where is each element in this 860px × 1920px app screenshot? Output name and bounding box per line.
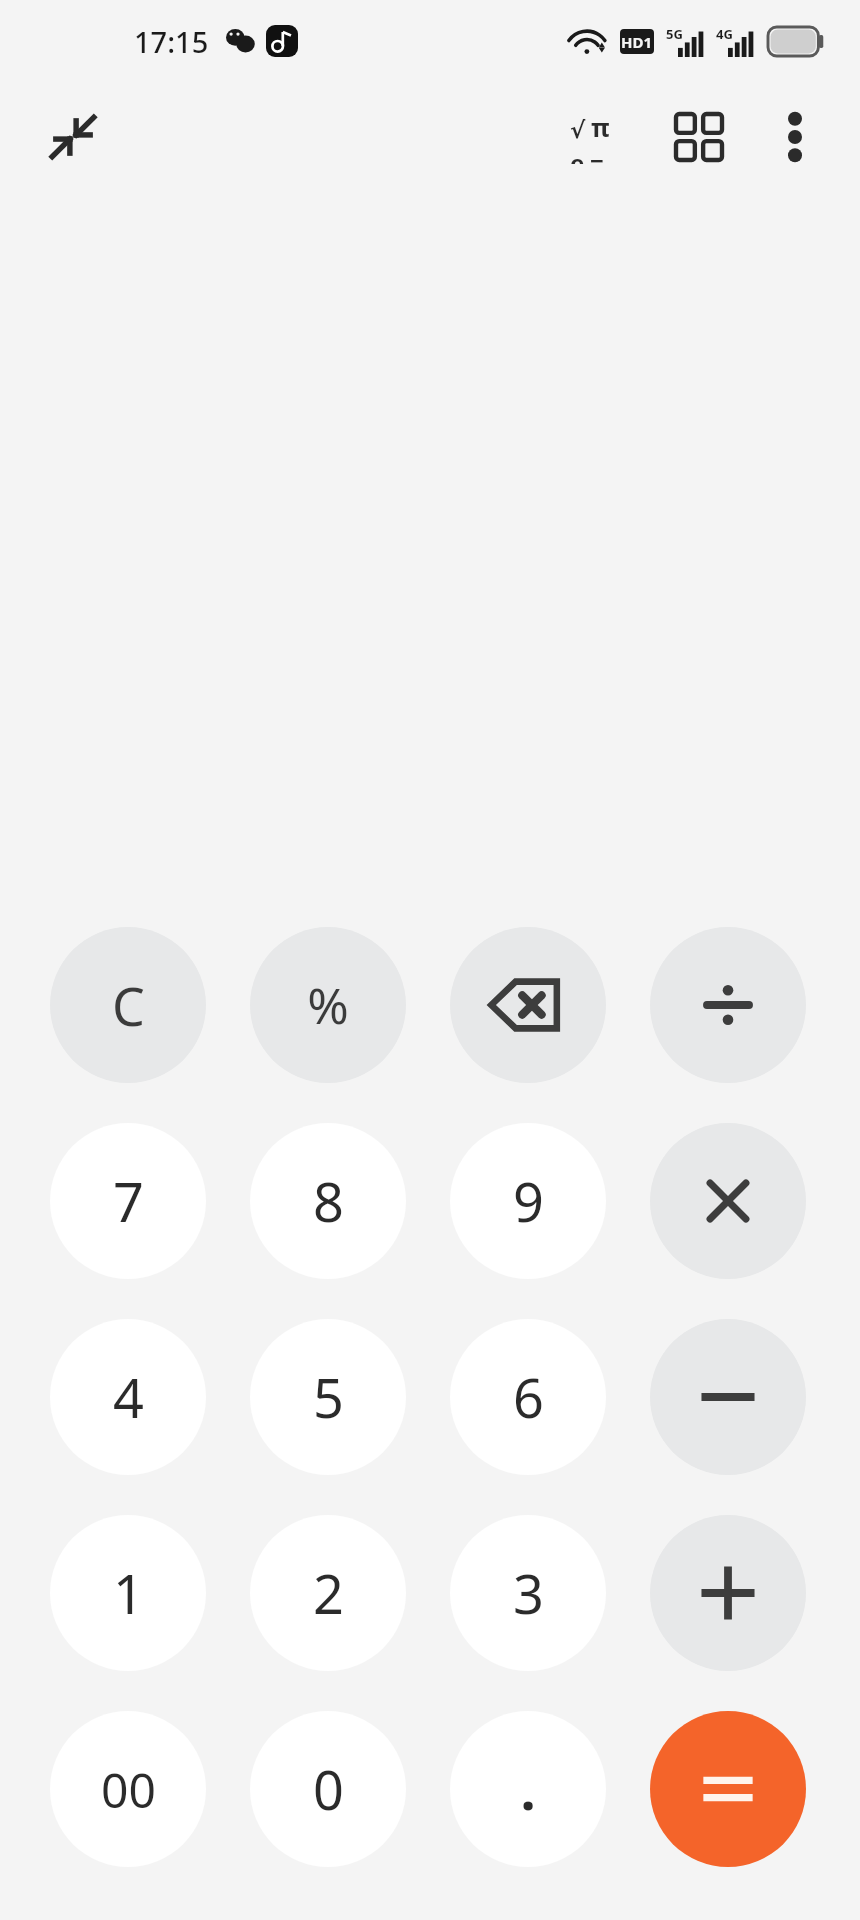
staticText: √	[570, 117, 586, 144]
staticText: .	[520, 1752, 536, 1826]
staticText: 3	[513, 1556, 544, 1630]
staticText: 8	[313, 1164, 344, 1238]
staticText: 0	[313, 1752, 344, 1826]
button[interactable]: 6	[450, 1319, 606, 1475]
staticText: π	[591, 110, 610, 144]
button[interactable]: 0	[250, 1711, 406, 1867]
staticText: =	[590, 146, 604, 164]
button[interactable]: Multiply	[650, 1123, 806, 1279]
button[interactable]: Minus	[650, 1319, 806, 1475]
button[interactable]: 00	[50, 1711, 206, 1867]
button[interactable]: .	[450, 1711, 606, 1867]
button[interactable]: 3	[450, 1515, 606, 1671]
staticText: 00	[101, 1757, 156, 1822]
button[interactable]: Converters	[656, 94, 742, 180]
button[interactable]: 5	[250, 1319, 406, 1475]
button[interactable]: Backspace	[450, 927, 606, 1083]
staticText: %	[307, 971, 349, 1039]
staticText: 9	[513, 1164, 544, 1238]
staticText: HD1	[621, 32, 653, 52]
button[interactable]: More options	[752, 94, 838, 180]
button[interactable]: 8	[250, 1123, 406, 1279]
staticText: 1	[113, 1556, 144, 1630]
button[interactable]: Divide	[650, 927, 806, 1083]
button[interactable]: 1	[50, 1515, 206, 1671]
staticText: 7	[113, 1164, 144, 1238]
staticText: e	[570, 146, 585, 164]
button[interactable]: 2	[250, 1515, 406, 1671]
button[interactable]: Scientific mode	[556, 94, 642, 180]
staticText: 5	[313, 1360, 344, 1434]
staticText: 2	[313, 1556, 344, 1630]
staticText: 17:15	[134, 22, 209, 61]
button[interactable]: C	[50, 927, 206, 1083]
staticText: 4	[113, 1360, 144, 1434]
staticText: 6	[513, 1360, 544, 1434]
button[interactable]: Collapse	[30, 94, 116, 180]
staticText: 5G	[666, 25, 683, 43]
button[interactable]: %	[250, 927, 406, 1083]
button[interactable]: Plus	[650, 1515, 806, 1671]
button[interactable]: 4	[50, 1319, 206, 1475]
button[interactable]: Equals	[650, 1711, 806, 1867]
button[interactable]: 9	[450, 1123, 606, 1279]
staticText: 4G	[716, 25, 733, 43]
staticText: C	[112, 970, 145, 1041]
button[interactable]: 7	[50, 1123, 206, 1279]
